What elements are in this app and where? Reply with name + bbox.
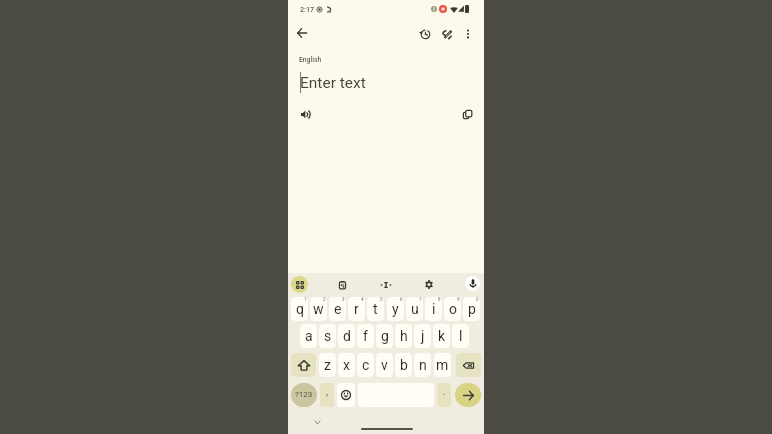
button[interactable]: c [357, 353, 374, 377]
staticText: b [400, 357, 408, 373]
button[interactable]: Enter [455, 383, 481, 407]
button[interactable]: More options [458, 24, 478, 44]
button[interactable]: r [348, 297, 365, 321]
staticText: 3 [342, 297, 345, 302]
staticText: p [468, 301, 476, 317]
button[interactable]: g [376, 324, 393, 348]
staticText: ?123 [295, 390, 313, 399]
staticText: m [436, 357, 449, 373]
staticText: s [324, 328, 332, 344]
staticText: Enter text [300, 74, 366, 92]
button[interactable]: Shift [291, 353, 316, 377]
button[interactable]: Back [292, 23, 312, 43]
staticText: c [362, 357, 370, 373]
button[interactable]: Backspace [456, 353, 481, 377]
staticText: 9 [457, 297, 460, 302]
staticText: l [459, 328, 463, 344]
staticText: 6 [400, 297, 403, 302]
staticText: . [443, 386, 446, 398]
button[interactable]: e [329, 297, 346, 321]
button[interactable]: Emoji [337, 383, 355, 407]
staticText: x [343, 357, 350, 373]
button[interactable]: Text editing [377, 276, 394, 293]
staticText: 2:17 [300, 5, 315, 13]
button[interactable]: q [291, 297, 308, 321]
button[interactable]: h [395, 324, 412, 348]
staticText: w [313, 301, 324, 317]
staticText: r [354, 301, 359, 317]
staticText: v [381, 357, 388, 373]
staticText: u [411, 301, 419, 317]
button[interactable]: y [387, 297, 404, 321]
button[interactable]: Copy [457, 104, 477, 124]
button[interactable]: Period [437, 383, 451, 407]
button[interactable]: a [300, 324, 317, 348]
staticText: d [343, 328, 351, 344]
button[interactable]: History [414, 24, 434, 44]
button[interactable]: k [433, 324, 450, 348]
button[interactable]: Toolbox [291, 276, 308, 293]
staticText: f [363, 328, 368, 344]
staticText: o [449, 301, 457, 317]
staticText: 1 [304, 297, 307, 302]
staticText: 0 [476, 297, 479, 302]
staticText: 4 [361, 297, 364, 302]
button[interactable]: f [357, 324, 374, 348]
button[interactable]: j [414, 324, 431, 348]
staticText: 2 [323, 297, 326, 302]
button[interactable]: n [414, 353, 431, 377]
staticText: i [432, 301, 436, 317]
staticText: g [381, 328, 389, 344]
staticText: English [299, 56, 322, 64]
button[interactable]: Voice input [465, 276, 480, 291]
staticText: 7 [419, 297, 422, 302]
staticText: , [326, 386, 328, 398]
button[interactable]: i [425, 297, 442, 321]
button[interactable]: p [463, 297, 480, 321]
staticText: j [421, 328, 425, 344]
button[interactable]: Comma [320, 383, 334, 407]
staticText: q [296, 301, 304, 317]
button[interactable]: w [310, 297, 327, 321]
button[interactable]: Listen [295, 104, 315, 124]
staticText: a [305, 328, 313, 344]
button[interactable]: Settings [420, 276, 437, 293]
button[interactable]: Hide keyboard [310, 415, 324, 429]
button[interactable]: t [367, 297, 384, 321]
button[interactable]: m [434, 353, 451, 377]
staticText: n [419, 357, 427, 373]
button[interactable]: l [452, 324, 469, 348]
button[interactable]: Handwriting [437, 24, 457, 44]
button[interactable]: x [338, 353, 355, 377]
button[interactable]: z [319, 353, 336, 377]
button[interactable]: Clipboard [334, 276, 351, 293]
staticText: h [400, 328, 408, 344]
button[interactable]: u [406, 297, 423, 321]
staticText: y [392, 301, 399, 317]
staticText: e [334, 301, 342, 317]
staticText: k [438, 328, 446, 344]
button[interactable]: Symbols [291, 383, 317, 407]
staticText: 8 [438, 297, 441, 302]
staticText: 5 [380, 297, 383, 302]
staticText: z [324, 357, 331, 373]
button[interactable]: b [395, 353, 412, 377]
button[interactable]: s [319, 324, 336, 348]
staticText: t [373, 301, 378, 317]
button[interactable]: o [444, 297, 461, 321]
button[interactable]: d [338, 324, 355, 348]
button[interactable]: v [376, 353, 393, 377]
